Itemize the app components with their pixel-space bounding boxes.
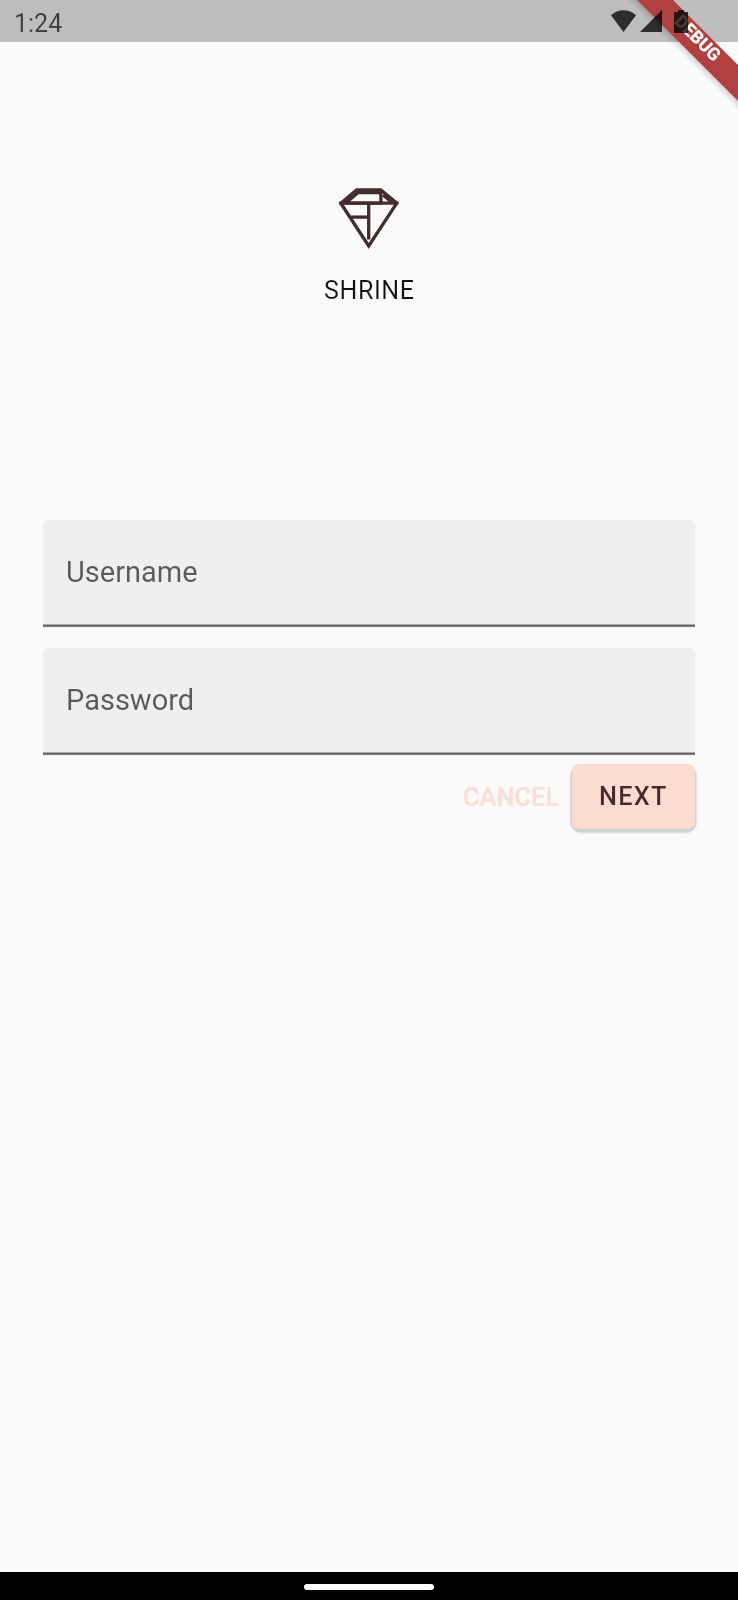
staticText: CANCEL <box>463 783 560 813</box>
staticText: SHRINE <box>324 276 415 305</box>
staticText: Password <box>66 683 195 717</box>
staticText: NEXT <box>599 782 668 812</box>
button[interactable]: NEXT <box>572 764 695 829</box>
staticText: 1:24 <box>14 9 63 38</box>
button[interactable]: Username <box>43 520 695 628</box>
button[interactable]: CANCEL <box>453 765 570 830</box>
staticText: DEBUG <box>670 11 725 66</box>
button[interactable]: Password <box>43 648 695 756</box>
staticText: Username <box>66 555 198 589</box>
